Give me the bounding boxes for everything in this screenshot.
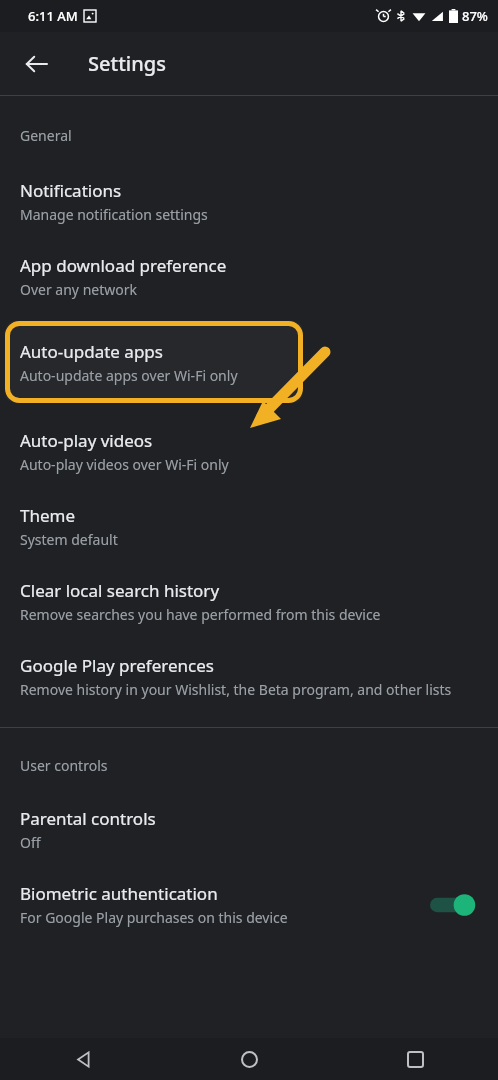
button[interactable]: Clear local search history [0, 549, 498, 624]
button[interactable]: App download preference [0, 224, 498, 299]
staticText: Settings [88, 50, 166, 77]
staticText: Biometric authentication [20, 882, 218, 905]
button[interactable]: Auto-play videos [0, 403, 498, 474]
button[interactable]: Home [166, 1038, 332, 1080]
staticText: Auto-play videos [20, 429, 153, 452]
staticText: Parental controls [20, 807, 156, 830]
staticText: Auto-update apps [20, 340, 163, 363]
staticText: Clear local search history [20, 579, 220, 602]
staticText: 87% [462, 7, 488, 25]
staticText: Auto-update apps over Wi-Fi only [20, 366, 238, 385]
staticText: Remove history in your Wishlist, the Bet… [20, 680, 452, 699]
button[interactable]: Parental controls [0, 775, 498, 852]
staticText: User controls [20, 756, 108, 775]
button[interactable]: Back [0, 1038, 166, 1080]
button[interactable]: Biometric authentication toggle [430, 890, 482, 920]
staticText: Over any network [20, 280, 137, 299]
button[interactable]: Google Play preferences [0, 624, 498, 699]
staticText: Notifications [20, 179, 122, 202]
button[interactable]: Theme [0, 474, 498, 549]
staticText: 6:11 AM [28, 7, 78, 25]
staticText: Off [20, 833, 41, 852]
staticText: General [20, 126, 72, 145]
button[interactable]: Auto-update apps [5, 321, 303, 403]
staticText: Theme [20, 504, 76, 527]
button[interactable]: Recent apps [332, 1038, 498, 1080]
staticText: Remove searches you have performed from … [20, 605, 381, 624]
staticText: For Google Play purchases on this device [20, 908, 288, 927]
button[interactable]: Notifications [0, 145, 498, 224]
staticText: Auto-play videos over Wi-Fi only [20, 455, 229, 474]
staticText: Google Play preferences [20, 654, 214, 677]
button[interactable]: Back [14, 42, 58, 86]
staticText: App download preference [20, 254, 227, 277]
staticText: System default [20, 530, 118, 549]
button[interactable]: Biometric authentication [0, 852, 498, 927]
staticText: Manage notification settings [20, 205, 208, 224]
